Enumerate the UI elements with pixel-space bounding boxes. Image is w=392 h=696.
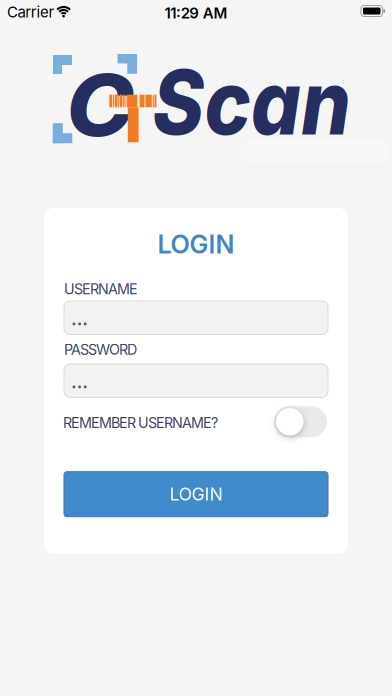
- button[interactable]: LOGIN: [64, 472, 328, 517]
- staticText: C: [66, 53, 129, 157]
- staticText: Scan: [152, 49, 377, 156]
- staticText: 11:29 AM: [164, 4, 227, 22]
- staticText: LOGIN: [169, 484, 222, 505]
- button[interactable]: Remember username: [274, 406, 327, 437]
- staticText: Carrier: [7, 3, 55, 21]
- staticText: LOGIN: [157, 229, 234, 260]
- staticText: PASSWORD: [64, 341, 137, 358]
- staticText: USERNAME: [64, 280, 138, 298]
- staticText: REMEMBER USERNAME?: [63, 414, 218, 431]
